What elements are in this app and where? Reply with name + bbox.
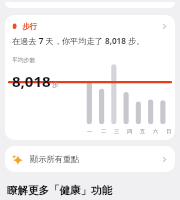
staticText: 二 (101, 128, 107, 135)
staticText: 步行 (22, 22, 37, 31)
staticText: 日 (166, 128, 172, 135)
staticText: 瞭解更多「健康」功能 (7, 184, 112, 197)
button[interactable]: Highlights (5, 146, 175, 172)
staticText: 步 (52, 81, 59, 89)
staticText: 四 (127, 128, 133, 135)
other: Open (161, 23, 168, 30)
staticText: 8,018 (12, 71, 51, 91)
other: Open (161, 156, 168, 163)
staticText: 三 (114, 128, 120, 135)
staticText: 顯示所有重點 (30, 154, 80, 164)
other: Highlights (12, 154, 23, 165)
staticText: 六 (153, 128, 159, 135)
other: Walking (12, 23, 19, 30)
staticText: 五 (140, 128, 146, 135)
staticText: 在過去 7 天，你平均走了 8,018 步。 (12, 35, 145, 46)
staticText: 一 (87, 128, 93, 135)
staticText: 平均步數 (12, 56, 36, 63)
button[interactable]: Walking (5, 15, 175, 140)
